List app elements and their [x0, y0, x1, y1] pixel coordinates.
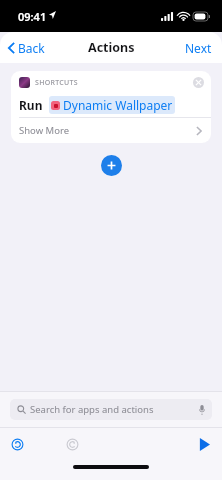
staticText: Actions [88, 39, 135, 56]
staticText: Dynamic Wallpaper [63, 97, 173, 113]
staticText: Back [18, 40, 45, 56]
button[interactable]: Remove action [191, 75, 205, 89]
button[interactable]: Run shortcut [194, 434, 214, 454]
staticText: 09:41 [18, 9, 47, 24]
button[interactable]: Back [0, 36, 53, 60]
button[interactable]: Dynamic Wallpaper [49, 96, 175, 114]
button[interactable]: Show More [11, 118, 211, 143]
button[interactable]: Add action [101, 155, 122, 176]
staticText: Search for apps and actions [30, 403, 154, 416]
button[interactable]: Undo [7, 434, 27, 454]
button[interactable]: Search for apps and actions [10, 399, 212, 420]
other: Voice search [199, 405, 205, 415]
button[interactable]: Next [175, 35, 222, 61]
staticText: SHORTCUTS [35, 78, 78, 88]
button[interactable]: Redo [62, 434, 82, 454]
staticText: Show More [19, 124, 70, 137]
staticText: Run [19, 97, 43, 113]
